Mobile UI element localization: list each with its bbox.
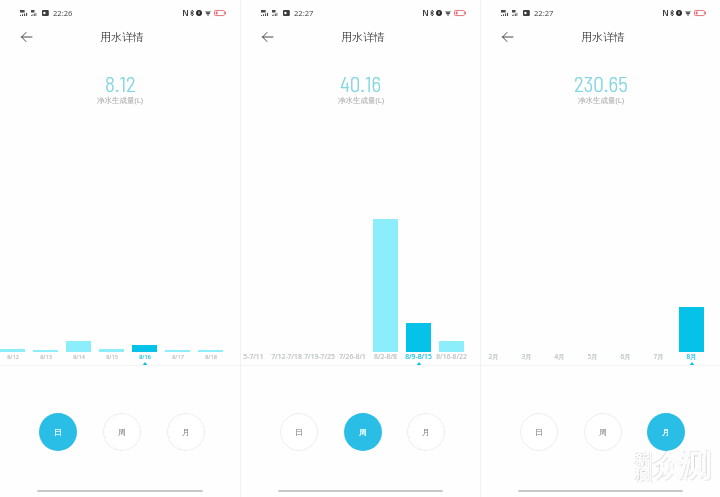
button[interactable]: 周	[103, 413, 141, 451]
staticText: 净水生成量(L)	[338, 95, 384, 105]
staticText: 新	[634, 450, 647, 466]
staticText: 用水详情	[581, 30, 625, 44]
button[interactable]	[675, 219, 708, 352]
staticText: 净水生成量(L)	[578, 95, 624, 105]
staticText: 日	[54, 427, 62, 437]
button[interactable]: 月	[407, 413, 445, 451]
staticText: 22:26	[53, 8, 73, 18]
staticText: 周	[118, 427, 126, 437]
staticText: 月	[422, 427, 430, 437]
staticText: 8/18	[205, 353, 217, 361]
staticText: 5-7/11	[243, 352, 264, 361]
staticText: 净水生成量(L)	[97, 95, 143, 105]
staticText: 8/2-8/8	[374, 352, 397, 361]
staticText: 用水详情	[341, 30, 385, 44]
button[interactable]	[95, 219, 128, 352]
button[interactable]: 周	[584, 413, 622, 451]
button[interactable]: Back	[14, 25, 38, 49]
button[interactable]	[194, 219, 227, 352]
staticText: 日	[535, 427, 543, 437]
staticText: 8/15	[106, 353, 118, 361]
staticText: 8/16-8/22	[436, 352, 467, 361]
staticText: 22:27	[534, 8, 554, 18]
button[interactable]: 月	[167, 413, 205, 451]
staticText: 2月	[488, 352, 499, 361]
button[interactable]: 周	[344, 413, 382, 451]
staticText: 5月	[587, 352, 598, 361]
button[interactable]	[29, 219, 62, 352]
staticText: 8/17	[172, 353, 184, 361]
staticText: 22:27	[294, 8, 314, 18]
staticText: 新	[635, 451, 648, 467]
staticText: 周	[599, 427, 607, 437]
staticText: 7/19-7/25	[304, 352, 335, 361]
staticText: 8/9-8/15	[405, 352, 432, 361]
button[interactable]: Back	[255, 25, 279, 49]
staticText: 3月	[521, 352, 532, 361]
staticText: 8/12	[7, 353, 19, 361]
staticText: 8/16	[139, 353, 151, 361]
staticText: 日	[295, 427, 303, 437]
staticText: 众测	[654, 449, 712, 486]
staticText: 8.12	[105, 71, 136, 96]
staticText: 7/12-7/18	[271, 352, 302, 361]
staticText: 浪	[634, 466, 647, 482]
staticText: 230.65	[574, 71, 628, 96]
button[interactable]: 日	[39, 413, 77, 451]
button[interactable]	[0, 219, 29, 352]
staticText: 8/14	[73, 353, 85, 361]
button[interactable]: 日	[280, 413, 318, 451]
staticText: 浪	[635, 467, 648, 483]
staticText: 月	[182, 427, 190, 437]
staticText: 6月	[620, 352, 631, 361]
button[interactable]	[128, 219, 161, 352]
button[interactable]	[402, 219, 435, 352]
button[interactable]: 日	[520, 413, 558, 451]
button[interactable]: 月	[647, 413, 685, 451]
staticText: 众测	[652, 447, 710, 484]
staticText: 7/26-8/1	[339, 352, 366, 361]
button[interactable]	[369, 219, 402, 352]
staticText: 用水详情	[100, 30, 144, 44]
button[interactable]: Back	[495, 25, 519, 49]
staticText: 浪	[636, 468, 649, 484]
staticText: 新	[636, 452, 649, 468]
staticText: 8月	[686, 352, 697, 361]
staticText: 7月	[653, 352, 664, 361]
button[interactable]	[161, 219, 194, 352]
staticText: 4月	[554, 352, 565, 361]
button[interactable]	[62, 219, 95, 352]
staticText: 8/13	[40, 353, 52, 361]
button[interactable]	[435, 219, 468, 352]
staticText: 40.16	[340, 71, 382, 96]
staticText: 众测	[653, 448, 711, 485]
staticText: 月	[662, 427, 670, 437]
staticText: 周	[359, 427, 367, 437]
